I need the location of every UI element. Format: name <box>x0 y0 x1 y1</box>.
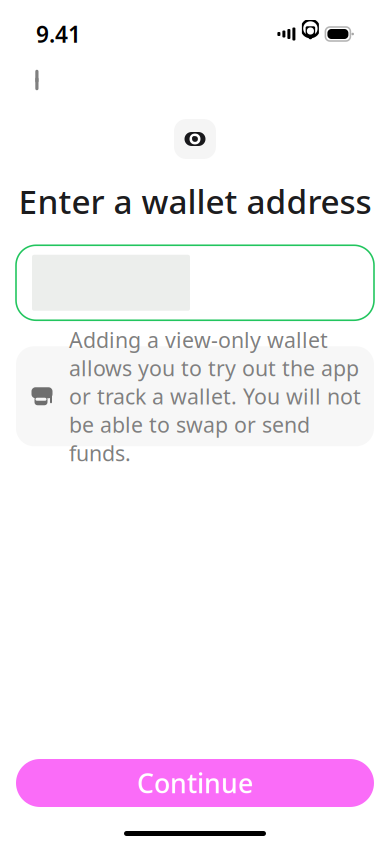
staticText: 9.41 <box>36 19 81 49</box>
staticText: Continue <box>137 765 253 801</box>
staticText: Adding a view-only wallet allows you to … <box>69 325 361 467</box>
staticText: Enter a wallet address <box>18 179 371 223</box>
button[interactable]: Back <box>19 60 59 100</box>
button[interactable]: Continue <box>16 759 374 807</box>
button[interactable] <box>16 245 374 320</box>
